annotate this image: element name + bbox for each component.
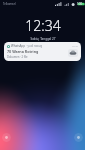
staticText: Telkomsel (3, 2, 16, 6)
staticText: · yudi rawug (26, 44, 43, 48)
staticText: Sabtu, Tanggal 27 (30, 37, 56, 41)
staticText: 70 Warna Rotring (7, 49, 39, 54)
button[interactable]: Camera (74, 133, 83, 142)
staticText: 100 (77, 2, 83, 6)
button[interactable]: WhatsApp (4, 42, 81, 61)
staticText: WhatsApp (11, 44, 25, 48)
staticText: Dokumen · 2 file (7, 55, 28, 59)
staticText: 12.31 (72, 44, 79, 47)
staticText: 12:34 (25, 16, 61, 35)
button[interactable]: Phone (2, 133, 11, 142)
